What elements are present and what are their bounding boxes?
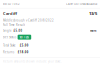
staticText: BET ID 1062	[3, 2, 20, 6]
staticText: Total Stake	[3, 44, 16, 47]
staticText: Middlesbrough v Cardiff 20/8/2022	[3, 19, 54, 22]
staticText: SETTLED	[19, 35, 29, 39]
staticText: CASH OUT UNAVAILABLE	[66, 2, 97, 6]
staticText: 13/5	[89, 11, 97, 16]
staticText: £5.00	[20, 44, 29, 47]
staticText: More	[90, 29, 97, 32]
staticText: £18.00	[18, 50, 29, 54]
staticText: Bet Status	[3, 35, 16, 39]
staticText: Cardiff	[3, 11, 17, 16]
staticText: Return amounts shown include your stake.	[3, 60, 62, 63]
staticText: Returns	[3, 50, 14, 54]
staticText: Single	[3, 29, 12, 32]
button[interactable]: More	[90, 29, 97, 32]
staticText: £5.00	[14, 29, 23, 32]
staticText: Full Time Result	[3, 23, 25, 27]
